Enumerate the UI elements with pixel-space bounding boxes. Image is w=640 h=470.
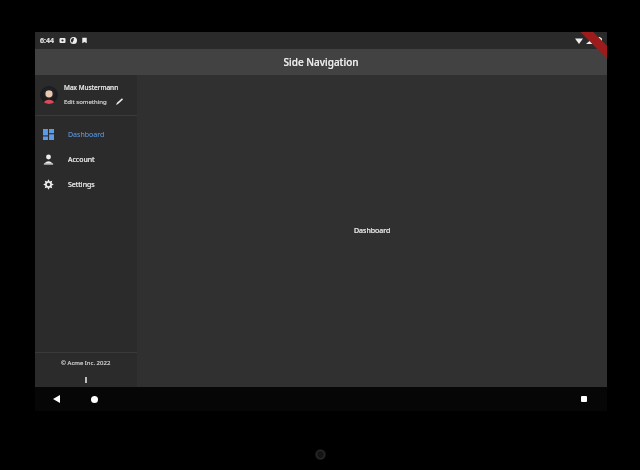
button[interactable]: Home — [85, 390, 103, 408]
staticText: Dashboard — [68, 130, 105, 140]
staticText: Max Mustermann — [64, 83, 119, 92]
staticText: Edit something — [64, 98, 107, 106]
staticText: © Acme Inc. 2022 — [61, 359, 111, 367]
staticText: Side Navigation — [283, 55, 359, 69]
button[interactable]: Recent apps — [575, 390, 593, 408]
button[interactable]: Edit — [114, 97, 124, 107]
staticText: Settings — [68, 180, 95, 190]
button[interactable]: Back — [47, 390, 65, 408]
staticText: Dashboard — [354, 226, 391, 236]
staticText: Account — [68, 155, 95, 165]
button[interactable]: Account — [35, 147, 137, 172]
button[interactable]: Settings — [35, 172, 137, 197]
button[interactable]: Profile picture — [40, 86, 58, 104]
staticText: 6:44 — [40, 36, 54, 46]
button[interactable]: Dashboard — [35, 122, 137, 147]
